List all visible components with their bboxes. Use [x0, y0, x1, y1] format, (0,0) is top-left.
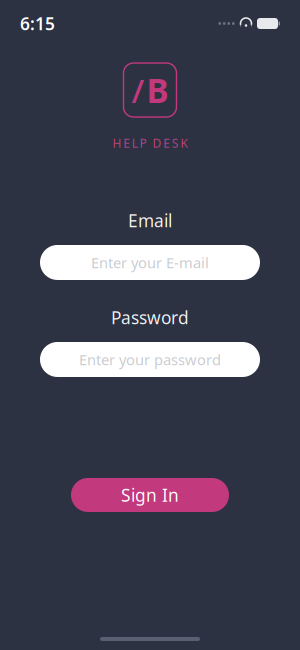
button[interactable]: Enter your E-mail	[40, 245, 260, 280]
staticText: HELP DESK	[113, 135, 187, 151]
staticText: B	[146, 68, 168, 112]
staticText: Enter your password	[79, 350, 221, 369]
staticText: /	[131, 68, 144, 112]
button[interactable]: Sign In	[71, 478, 229, 512]
staticText: Password	[111, 306, 189, 329]
staticText: Enter your E-mail	[91, 253, 209, 272]
staticText: 6:15	[20, 12, 55, 35]
button[interactable]: Enter your password	[40, 342, 260, 377]
staticText: Email	[128, 209, 172, 232]
staticText: Sign In	[121, 483, 179, 506]
